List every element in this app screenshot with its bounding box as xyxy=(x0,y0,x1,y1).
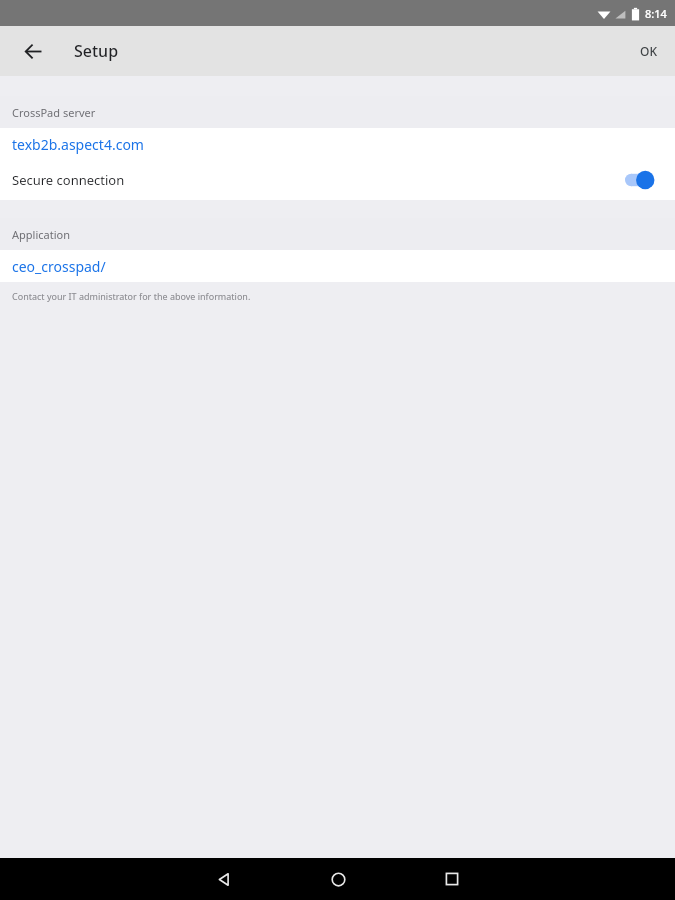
staticText: Application xyxy=(12,227,70,242)
button[interactable]: Secure connection xyxy=(0,160,675,200)
button[interactable]: Back xyxy=(196,858,252,900)
staticText: texb2b.aspect4.com xyxy=(12,135,144,154)
button[interactable]: Home xyxy=(310,858,366,900)
button[interactable]: ceo_crosspad/ xyxy=(0,250,675,282)
staticText: 8:14 xyxy=(645,6,667,21)
staticText: CrossPad server xyxy=(12,105,96,120)
button[interactable]: texb2b.aspect4.com xyxy=(0,128,675,160)
button[interactable]: Back xyxy=(14,32,52,70)
button[interactable]: OK xyxy=(622,26,675,76)
staticText: Setup xyxy=(74,40,119,62)
button[interactable]: Recent apps xyxy=(424,858,480,900)
staticText: Secure connection xyxy=(12,171,625,189)
staticText: ceo_crosspad/ xyxy=(12,257,106,276)
staticText: OK xyxy=(640,43,657,59)
staticText: Contact your IT administrator for the ab… xyxy=(12,290,251,302)
